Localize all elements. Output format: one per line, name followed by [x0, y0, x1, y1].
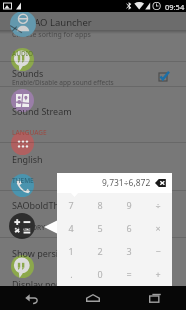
button[interactable]: Sounds: [0, 61, 186, 81]
button[interactable]: Backspace: [155, 179, 167, 187]
staticText: AUDIO: [12, 49, 34, 58]
staticText: CATEGORY: [12, 223, 45, 232]
button[interactable]: App icon: [11, 132, 34, 155]
staticText: ÷: [155, 199, 161, 211]
button[interactable]: 9: [114, 193, 143, 216]
button[interactable]: Display popup on lock scr: [0, 272, 186, 292]
button[interactable]: English: [0, 147, 186, 167]
button[interactable]: 6: [114, 216, 143, 239]
button[interactable]: =: [114, 262, 143, 285]
button[interactable]: Profile: [10, 11, 36, 37]
staticText: Choose sorting for apps: [12, 30, 91, 40]
button[interactable]: ÷: [143, 193, 172, 216]
staticText: Sounds: [12, 67, 44, 79]
button[interactable]: ×: [143, 216, 172, 239]
staticText: ×: [155, 222, 161, 234]
staticText: English: [12, 153, 43, 165]
staticText: 2: [97, 245, 103, 257]
staticText: Enable/Disable app sound effects: [12, 78, 114, 87]
staticText: THEME: [12, 176, 34, 185]
staticText: SAOboldTheme: [12, 199, 78, 211]
staticText: 8: [97, 199, 103, 211]
button[interactable]: App icon: [11, 48, 34, 71]
button[interactable]: App icon: [11, 255, 34, 278]
staticText: 9: [126, 199, 132, 211]
button[interactable]: SAOboldTheme: [0, 193, 186, 213]
button[interactable]: Sound Stream: [0, 99, 186, 119]
button[interactable]: 0: [85, 262, 114, 285]
button[interactable]: Home: [62, 286, 124, 310]
staticText: −: [155, 245, 161, 257]
staticText: 4: [68, 222, 74, 234]
staticText: 6: [126, 222, 132, 234]
staticText: 1: [68, 245, 74, 257]
staticText: 0: [97, 268, 103, 280]
staticText: Show persistent notificat: [12, 247, 117, 259]
staticText: LANGUAGE: [12, 128, 47, 137]
staticText: =: [126, 268, 132, 280]
button[interactable]: 8: [85, 193, 114, 216]
staticText: .: [70, 268, 73, 280]
button[interactable]: App icon: [11, 89, 34, 112]
button[interactable]: 5: [85, 216, 114, 239]
button[interactable]: 3: [114, 239, 143, 262]
staticText: 09:54: [165, 2, 185, 12]
staticText: Sound Stream: [12, 105, 72, 117]
button[interactable]: +: [143, 262, 172, 285]
button[interactable]: 4: [57, 216, 85, 239]
button[interactable]: −: [143, 239, 172, 262]
staticText: Display popup on lock scr: [12, 278, 120, 290]
button[interactable]: Show persistent notificat: [0, 241, 186, 261]
staticText: 7: [68, 199, 74, 211]
staticText: +: [155, 268, 161, 280]
staticText: 9,731÷6,872: [102, 177, 151, 189]
button[interactable]: Back: [0, 286, 62, 310]
button[interactable]: 2: [85, 239, 114, 262]
staticText: 5: [97, 222, 103, 234]
button[interactable]: 1: [57, 239, 85, 262]
button[interactable]: App icon: [11, 174, 34, 197]
button[interactable]: 7: [57, 193, 85, 216]
button[interactable]: Enable sounds: [158, 71, 169, 82]
button[interactable]: Recent apps: [124, 286, 186, 310]
staticText: 3: [126, 245, 132, 257]
button[interactable]: App icon: [9, 213, 35, 239]
staticText: SAO Launcher: [29, 16, 92, 29]
button[interactable]: SAO Launcher: [0, 0, 186, 30]
